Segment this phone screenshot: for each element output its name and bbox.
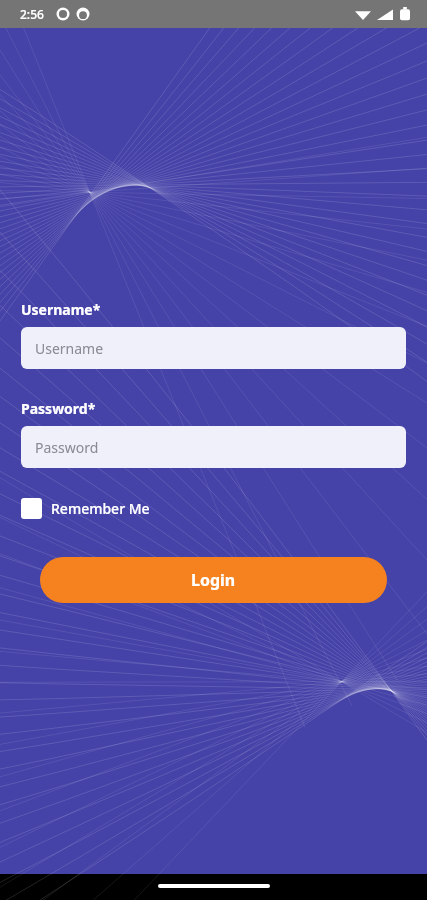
staticText: Password: [35, 438, 99, 457]
button[interactable]: Username: [21, 327, 406, 369]
staticText: Password*: [21, 399, 96, 418]
button[interactable]: Login: [40, 557, 387, 603]
button[interactable]: Remember Me: [21, 498, 150, 519]
staticText: Username: [35, 339, 104, 358]
staticText: Username*: [21, 300, 101, 319]
staticText: 2:56: [20, 6, 44, 22]
button[interactable]: Password: [21, 426, 406, 468]
staticText: Remember Me: [51, 499, 150, 518]
staticText: Login: [191, 569, 236, 591]
